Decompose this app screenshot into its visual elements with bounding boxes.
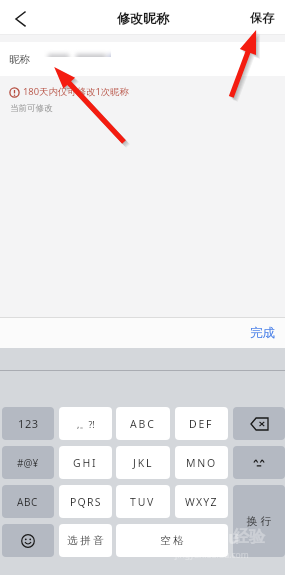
staticText: DEF [189, 417, 214, 431]
button[interactable]: 123 [2, 407, 54, 440]
button[interactable]: 昵称 [0, 42, 285, 76]
button[interactable]: 选拼音 [59, 524, 112, 557]
button[interactable]: Emoji [2, 524, 54, 557]
button[interactable]: Emoticons [233, 446, 285, 479]
staticText: 空格 [159, 534, 185, 547]
staticText: Baidu [191, 526, 240, 549]
button[interactable]: 空格 [116, 524, 228, 557]
staticText: ABC [17, 495, 39, 509]
button[interactable]: Backspace [233, 407, 285, 440]
button[interactable]: #@¥ [2, 446, 54, 479]
button[interactable]: JKL [116, 446, 170, 479]
staticText: 当前可修改 [10, 103, 53, 114]
staticText: JKL [133, 456, 154, 470]
button[interactable]: TUV [116, 485, 170, 518]
button[interactable]: 完成 [199, 318, 285, 348]
staticText: 保存 [250, 10, 274, 25]
staticText: 180天内仅可修改1次昵称 [23, 85, 130, 98]
staticText: 修改昵称 [117, 10, 169, 26]
staticText: #@¥ [17, 456, 39, 470]
staticText: GHI [73, 456, 98, 470]
button[interactable]: 保存 [250, 0, 274, 34]
button[interactable]: GHI [59, 446, 112, 479]
button[interactable]: WXYZ [175, 485, 228, 518]
button[interactable]: ,。?! [59, 407, 112, 440]
staticText: 换行 [245, 514, 273, 528]
staticText: ABC [130, 417, 156, 431]
staticText: PQRS [70, 495, 102, 509]
button[interactable]: Back [7, 5, 34, 32]
staticText: 选拼音 [66, 534, 105, 547]
staticText: WXYZ [185, 495, 218, 509]
button[interactable]: 换行 [233, 485, 285, 557]
staticText: 昵称 [9, 53, 30, 66]
staticText: TUV [130, 495, 156, 509]
staticText: MNO [186, 456, 218, 470]
staticText: 经验 [233, 527, 265, 547]
button[interactable]: ABC [116, 407, 170, 440]
button[interactable]: DEF [175, 407, 228, 440]
staticText: ,。?! [77, 418, 95, 430]
button[interactable]: PQRS [59, 485, 112, 518]
button[interactable]: MNO [175, 446, 228, 479]
button[interactable]: ABC [2, 485, 54, 518]
staticText: jingyan.baidu.com [175, 549, 249, 561]
staticText: 完成 [250, 325, 275, 341]
staticText: 123 [18, 416, 39, 431]
